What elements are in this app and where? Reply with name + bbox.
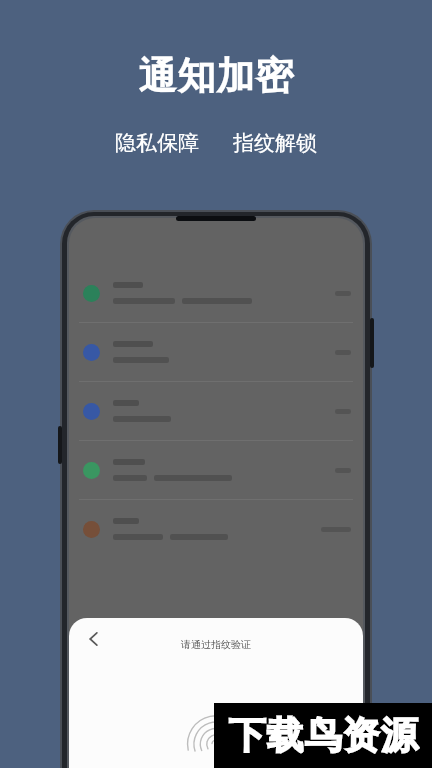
staticText: 通知加密 bbox=[138, 52, 294, 100]
staticText: 隐私保障 bbox=[115, 130, 199, 156]
staticText: 请通过指纹验证 bbox=[181, 638, 251, 651]
button[interactable] bbox=[69, 323, 363, 381]
button[interactable]: Fingerprint scanner bbox=[187, 714, 245, 768]
button[interactable] bbox=[69, 382, 363, 440]
button[interactable] bbox=[69, 500, 363, 558]
button[interactable] bbox=[69, 264, 363, 322]
button[interactable] bbox=[69, 441, 363, 499]
staticText: 下载鸟资源 bbox=[228, 712, 418, 759]
staticText: 指纹解锁 bbox=[233, 130, 317, 156]
button[interactable]: Back bbox=[77, 622, 111, 656]
